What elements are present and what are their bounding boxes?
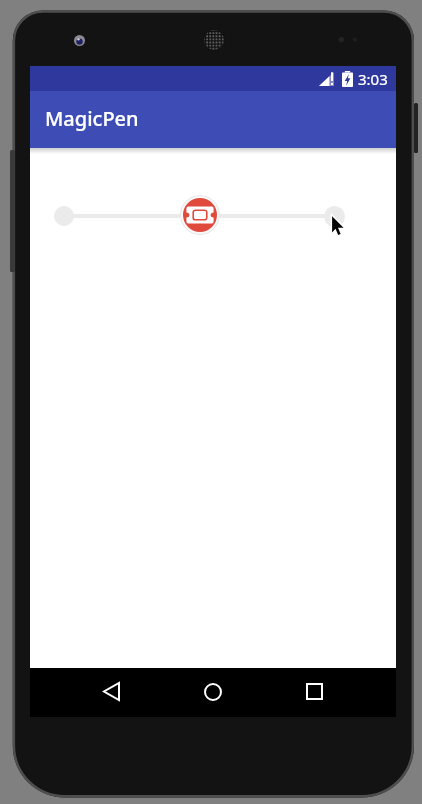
- button[interactable]: Back: [85, 667, 137, 716]
- staticText: MagicPen: [45, 105, 139, 132]
- button[interactable]: Home: [187, 667, 239, 716]
- button[interactable]: Ticket: [180, 195, 220, 235]
- button[interactable]: Start handle: [54, 206, 74, 226]
- staticText: 3:03: [358, 69, 388, 89]
- button[interactable]: Recent apps: [288, 667, 340, 716]
- button[interactable]: End handle: [324, 206, 345, 227]
